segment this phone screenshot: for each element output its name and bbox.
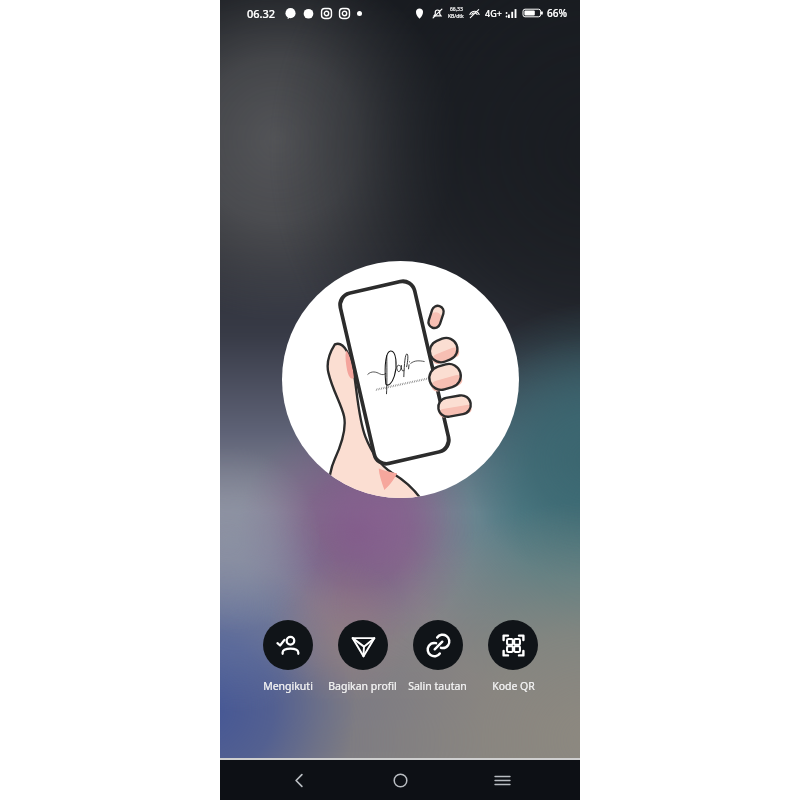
staticText: Bagikan profil [328,679,397,693]
staticText: Kode QR [492,679,535,693]
button[interactable]: Recent apps [479,760,525,800]
button[interactable]: Mengikuti [250,620,325,693]
staticText: 66,33 [450,6,463,13]
button[interactable]: Back [276,760,322,800]
button[interactable]: Home [377,760,423,800]
button[interactable]: Salin tautan [400,620,475,693]
staticText: KB/dtk [448,13,464,20]
staticText: Salin tautan [408,679,467,693]
staticText: 4G+ [485,7,502,19]
button[interactable]: Bagikan profil [325,620,400,693]
staticText: 66% [547,6,567,20]
button[interactable]: Profile photo [282,261,519,498]
staticText: Mengikuti [263,679,313,693]
staticText: 06.32 [247,6,276,21]
button[interactable]: Kode QR [475,620,550,693]
